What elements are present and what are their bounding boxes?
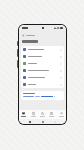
button[interactable]: Account [57, 110, 66, 119]
button[interactable] [23, 96, 55, 97]
button[interactable] [21, 53, 64, 60]
button[interactable]: Back [22, 33, 35, 38]
button[interactable] [21, 67, 64, 74]
button[interactable]: Home [19, 110, 28, 119]
button[interactable]: Tools [47, 110, 56, 119]
button[interactable]: Back [54, 121, 56, 123]
button[interactable] [21, 60, 64, 67]
button[interactable] [21, 74, 64, 81]
button[interactable] [21, 46, 64, 53]
button[interactable]: Scan [38, 110, 47, 119]
button[interactable] [21, 81, 64, 88]
button[interactable]: Devices [29, 110, 38, 119]
